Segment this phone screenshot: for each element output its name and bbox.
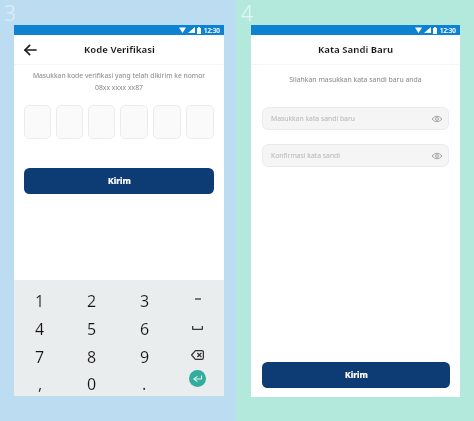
button[interactable]: 4	[14, 315, 66, 343]
button[interactable]: 0	[66, 371, 118, 396]
staticText: 2	[87, 290, 97, 312]
button[interactable]	[171, 315, 224, 343]
button[interactable]: 5	[66, 315, 118, 343]
other: Backspace	[191, 350, 204, 360]
button[interactable]	[88, 105, 115, 139]
button[interactable]: 6	[118, 315, 171, 343]
button[interactable]: Back	[21, 41, 38, 58]
button[interactable]: Konfirmasi kata sandi	[262, 144, 449, 167]
staticText: 5	[87, 318, 97, 340]
staticText: 9	[140, 346, 150, 368]
staticText: 4	[35, 318, 45, 340]
other: Show password	[431, 150, 443, 162]
staticText: Masukkan kata sandi baru	[271, 114, 355, 123]
staticText: Kode Verifikasi	[84, 43, 155, 56]
other: Enter	[189, 370, 206, 387]
button[interactable]: ,	[14, 371, 66, 396]
staticText: 4	[241, 0, 253, 28]
button[interactable]	[153, 105, 181, 139]
staticText: 3	[4, 0, 16, 28]
button[interactable]	[186, 105, 214, 139]
button[interactable]	[171, 287, 224, 315]
staticText: Silahkan masukkan kata sandi baru anda	[251, 75, 460, 84]
staticText: Kirim	[108, 175, 131, 187]
button[interactable]: 1	[14, 287, 66, 315]
staticText: ,	[38, 373, 43, 395]
button[interactable]: Backspace	[171, 343, 224, 371]
staticText: 7	[35, 346, 45, 368]
staticText: Konfirmasi kata sandi	[271, 151, 341, 160]
button[interactable]: .	[118, 371, 171, 396]
button[interactable]: Kirim	[24, 168, 214, 194]
staticText: Kata Sandi Baru	[318, 43, 394, 56]
staticText: 12:30	[440, 26, 456, 34]
button[interactable]: 9	[118, 343, 171, 371]
staticText: Kirim	[345, 369, 368, 381]
button[interactable]	[120, 105, 148, 139]
button[interactable]: 3	[118, 287, 171, 315]
button[interactable]: 8	[66, 343, 118, 371]
staticText: 6	[140, 318, 150, 340]
button[interactable]: Enter	[171, 371, 224, 396]
button[interactable]: 7	[14, 343, 66, 371]
staticText: 12:30	[204, 26, 220, 34]
staticText: .	[142, 373, 147, 395]
staticText: 0	[87, 373, 97, 395]
staticText: 8	[87, 346, 97, 368]
staticText: Masukkan kode verifikasi yang telah diki…	[20, 71, 218, 92]
other: Show password	[431, 113, 443, 125]
staticText: 3	[140, 290, 150, 312]
staticText: 1	[35, 290, 45, 312]
button[interactable]	[56, 105, 83, 139]
button[interactable]: Masukkan kata sandi baru	[262, 107, 449, 130]
button[interactable]	[24, 105, 51, 139]
button[interactable]: 2	[66, 287, 118, 315]
button[interactable]: Kirim	[262, 362, 450, 388]
